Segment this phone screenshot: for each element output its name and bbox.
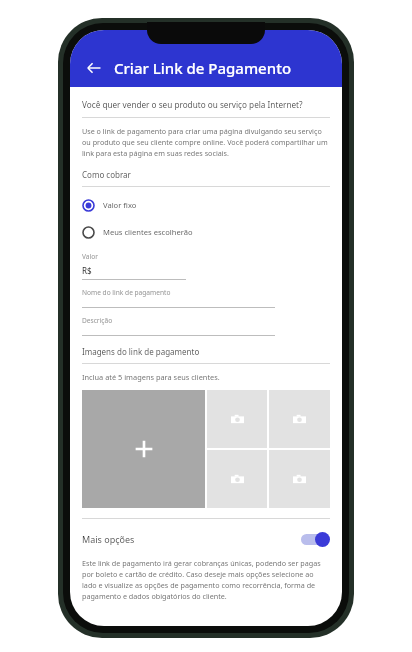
button[interactable]: Adicionar foto xyxy=(269,450,330,508)
button[interactable]: Mais opções xyxy=(82,526,330,552)
button[interactable]: Adicionar imagem xyxy=(82,390,205,508)
staticText: Mais opções xyxy=(82,533,135,545)
staticText: Valor xyxy=(82,252,98,261)
staticText: R$ xyxy=(82,265,92,276)
button[interactable]: Meus clientes escolherão xyxy=(82,221,330,243)
staticText: Como cobrar xyxy=(82,169,131,180)
staticText: Use o link de pagamento para criar uma p… xyxy=(82,126,330,158)
staticText: Você quer vender o seu produto ou serviç… xyxy=(82,99,303,110)
button[interactable]: Adicionar foto xyxy=(269,390,330,448)
staticText: Este link de pagamento irá gerar cobranç… xyxy=(82,558,330,601)
button[interactable]: Valor fixo xyxy=(82,194,330,216)
button[interactable]: Valor xyxy=(82,252,330,280)
staticText: Imagens do link de pagamento xyxy=(82,346,200,357)
button[interactable]: Adicionar foto xyxy=(207,390,267,448)
button[interactable]: Descrição xyxy=(82,316,330,336)
staticText: Inclua até 5 imagens para seus clientes. xyxy=(82,372,220,382)
staticText: Valor fixo xyxy=(103,200,137,210)
staticText: Descrição xyxy=(82,316,113,325)
button[interactable]: Voltar xyxy=(78,52,110,84)
staticText: Meus clientes escolherão xyxy=(103,227,193,237)
button[interactable]: Nome do link de pagamento xyxy=(82,288,330,308)
staticText: Criar Link de Pagamento xyxy=(114,58,292,78)
button[interactable]: Adicionar foto xyxy=(207,450,267,508)
staticText: Nome do link de pagamento xyxy=(82,288,171,297)
